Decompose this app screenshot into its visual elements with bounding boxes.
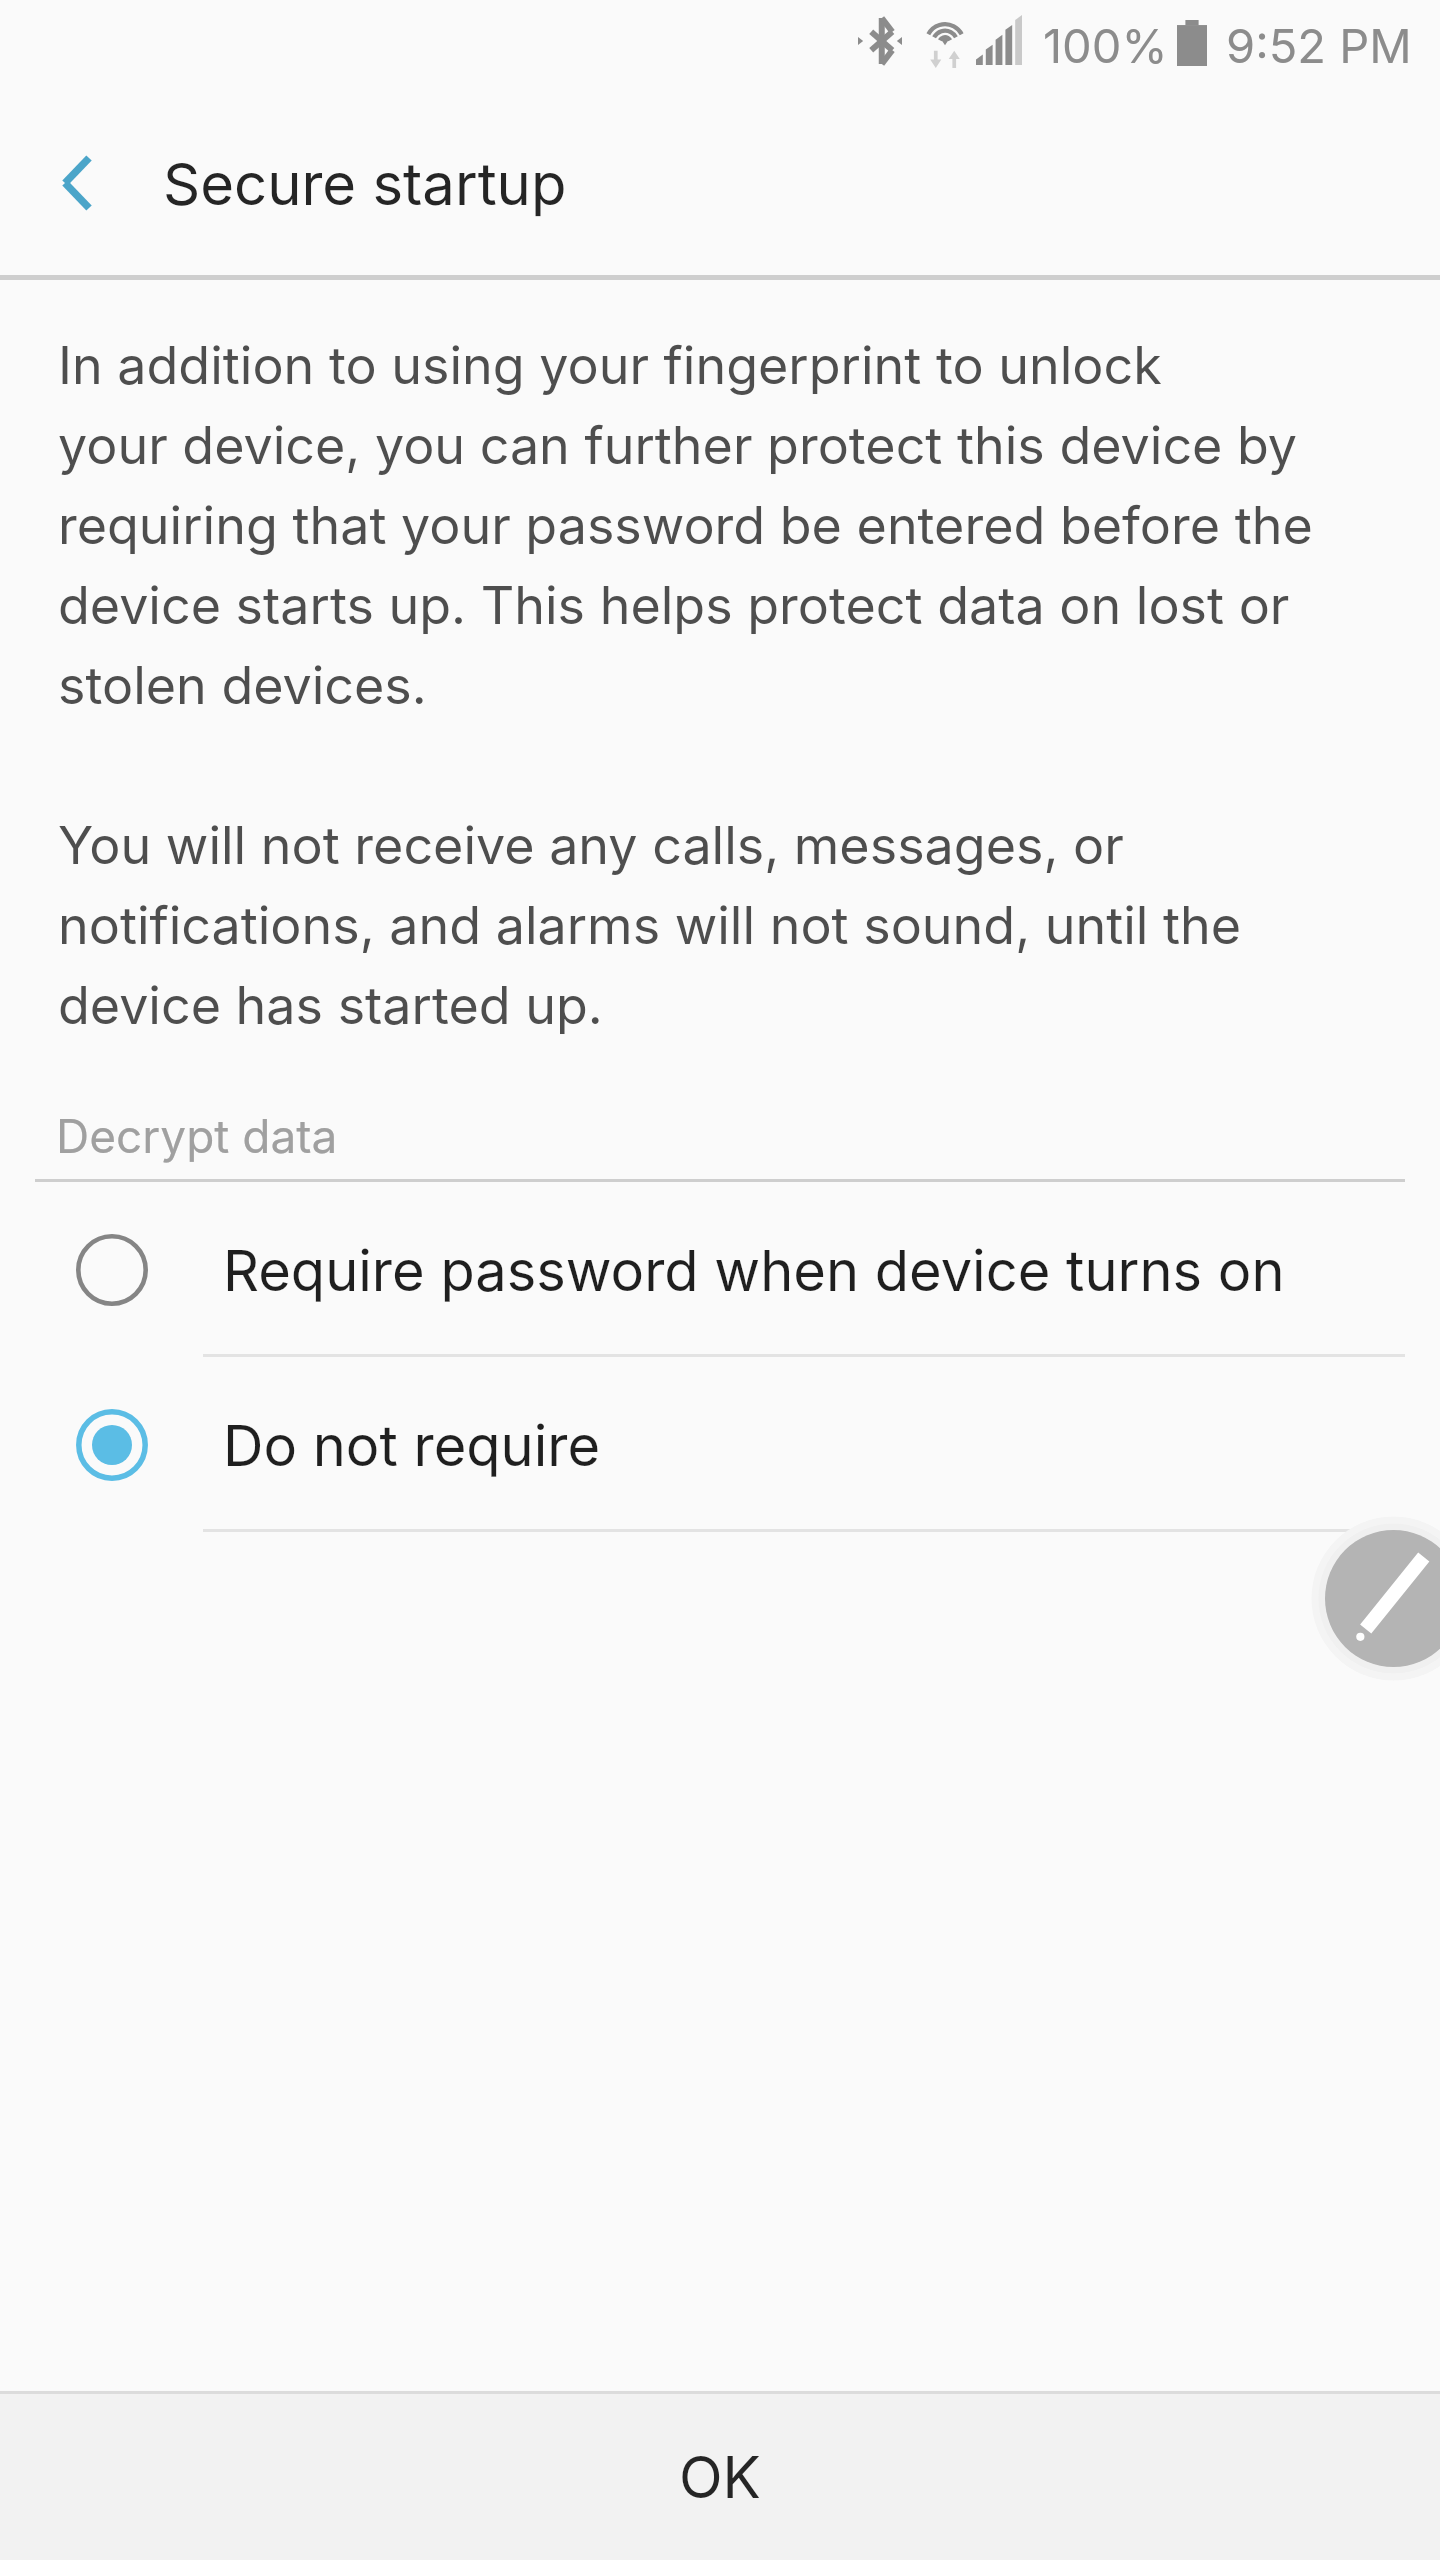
- staticText: Secure startup: [163, 146, 567, 220]
- button[interactable]: Require password when device turns on: [0, 1182, 1440, 1357]
- staticText: Decrypt data: [56, 1105, 338, 1165]
- button[interactable]: OK: [0, 2393, 1440, 2560]
- staticText: Require password when device turns on: [223, 1235, 1285, 1305]
- staticText: Do not require: [223, 1410, 601, 1480]
- staticText: 9:52 PM: [1226, 17, 1412, 75]
- staticText: OK: [679, 2442, 761, 2512]
- button[interactable]: Do not require: [0, 1357, 1440, 1532]
- button[interactable]: Navigate up: [29, 135, 125, 231]
- staticText: In addition to using your fingerprint to…: [58, 320, 1313, 1040]
- button[interactable]: Edit: [1325, 1530, 1440, 1667]
- staticText: 100%: [1043, 17, 1168, 75]
